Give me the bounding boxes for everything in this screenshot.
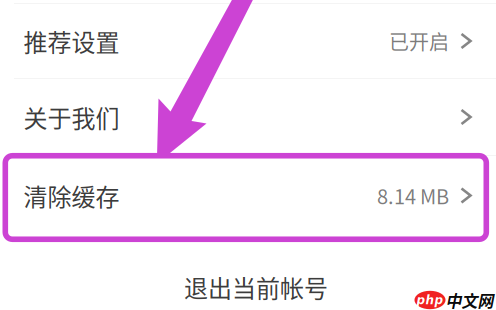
- staticText: 关于我们: [23, 100, 119, 134]
- staticText: 退出当前帐号: [184, 270, 328, 304]
- staticText: 8.14 MB: [377, 181, 449, 210]
- staticText: 中文网: [445, 288, 493, 310]
- staticText: php: [416, 293, 443, 307]
- staticText: 推荐设置: [23, 24, 119, 58]
- button[interactable]: 退出当前帐号: [168, 267, 328, 307]
- button[interactable]: 关于我们: [0, 79, 496, 155]
- staticText: 清除缓存: [23, 178, 119, 213]
- button[interactable]: 推荐设置: [0, 4, 496, 78]
- button[interactable]: 清除缓存: [0, 156, 496, 235]
- staticText: 已开启: [389, 26, 449, 55]
